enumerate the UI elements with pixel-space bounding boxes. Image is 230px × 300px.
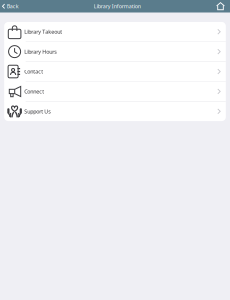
button[interactable]: Connect bbox=[4, 82, 226, 101]
button[interactable]: Back bbox=[0, 0, 19, 12]
button[interactable]: Home bbox=[216, 0, 230, 12]
button[interactable]: Support Us bbox=[4, 102, 226, 121]
staticText: Contact bbox=[24, 68, 43, 75]
staticText: Support Us bbox=[24, 108, 51, 115]
button[interactable]: Contact bbox=[4, 62, 226, 81]
staticText: Library Hours bbox=[24, 48, 57, 55]
staticText: Library Information bbox=[94, 3, 141, 10]
button[interactable]: Library Hours bbox=[4, 42, 226, 61]
button[interactable]: Library Takeout bbox=[4, 22, 226, 41]
staticText: Library Takeout bbox=[24, 28, 62, 35]
staticText: Back bbox=[7, 3, 19, 10]
staticText: Connect bbox=[24, 88, 44, 95]
